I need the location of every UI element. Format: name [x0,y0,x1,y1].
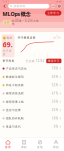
staticText: 9% [54,125,58,128]
button[interactable]: 特征工程实践 [3,81,61,89]
staticText: 18% [52,117,58,120]
staticText: 继续学习 [48,59,60,63]
button[interactable]: Back [3,3,7,9]
staticText: 复盘与迭代 [6,125,21,128]
staticText: 监控与告警 [6,108,21,112]
staticText: 章节列表 [3,59,15,63]
button[interactable]: Share [57,4,61,8]
staticText: 良好 [7,36,13,40]
staticText: 25% [52,108,58,112]
staticText: MLOps概念 [3,10,31,17]
button[interactable]: 搜索课程 [8,4,49,8]
button[interactable]: More [51,4,55,8]
staticText: 52% [52,83,58,87]
button[interactable]: 复盘与迭代 [3,122,61,131]
staticText: 搜索课程 [14,5,26,8]
staticText: 课程 [21,145,27,149]
staticText: 已完成 12/32 [26,59,45,63]
button[interactable]: 我的 [48,137,64,151]
button[interactable]: 发现 [32,137,48,151]
staticText: 特征工程实践 [6,83,24,87]
button[interactable]: 监控与告警 [3,106,61,114]
staticText: 立即学习 [47,11,59,15]
button[interactable]: 模型部署上线 [3,98,61,106]
button[interactable]: 数据标注规范 [3,73,61,81]
button[interactable]: 产品形态与定位 [3,64,61,73]
staticText: 首页 [5,145,11,149]
staticText: 69. [3,40,13,49]
staticText: 学习曲线走势 [18,36,36,39]
staticText: 65% [52,75,58,79]
button[interactable]: 模型训练流程 [3,89,61,98]
staticText: 9:41 [3,0,10,3]
staticText: 发现 [37,145,43,149]
staticText: 41% [52,92,58,95]
staticText: 产品形态与定位 [6,67,27,70]
staticText: 模型训练流程 [6,92,24,95]
button[interactable]: 继续学习 [46,59,61,63]
button[interactable]: 立即学习 [45,10,61,16]
staticText: 学习进度 [3,49,12,56]
staticText: 78% [52,67,58,70]
staticText: 模型部署上线 [6,100,24,103]
staticText: 入门 [4,21,10,24]
button[interactable]: 团队协作机制 [3,114,61,122]
staticText: 共32讲 · 5.2万人在学 [12,19,39,26]
staticText: 我的 [53,145,59,149]
staticText: 33% [52,100,58,103]
staticText: 团队协作机制 [6,117,24,120]
button[interactable]: 首页 [0,137,16,151]
button[interactable]: 课程 [16,137,32,151]
staticText: 数据标注规范 [6,75,24,78]
staticText: 近7日 [53,36,61,39]
